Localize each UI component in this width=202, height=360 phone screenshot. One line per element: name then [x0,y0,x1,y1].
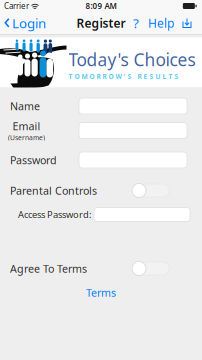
button[interactable]: Help [132,12,140,34]
staticText: 8:09 AM [85,1,116,11]
staticText: Name [10,99,40,113]
staticText: Carrier [4,1,29,11]
button[interactable]: Share [182,12,192,34]
staticText: Parental Controls [10,183,97,198]
button[interactable]: Toggle [132,183,168,197]
button[interactable]: Terms [0,286,202,298]
staticText: Login [12,14,46,32]
staticText: (Username) [8,133,45,142]
button[interactable]: Login [0,12,50,34]
button[interactable]: Help [148,12,174,34]
staticText: Help [148,15,174,31]
staticText: Today's Choices [68,48,195,71]
staticText: Agree To Terms [10,261,87,276]
staticText: ? [133,14,139,32]
staticText: Terms [86,285,116,300]
staticText: Password [10,153,57,167]
staticText: Access Password: [18,208,92,221]
staticText: T O M O R R O W ' S R E S U L T S [68,72,178,81]
button[interactable]: Toggle [132,261,168,275]
staticText: Email [12,119,40,133]
staticText: Register [76,15,125,31]
